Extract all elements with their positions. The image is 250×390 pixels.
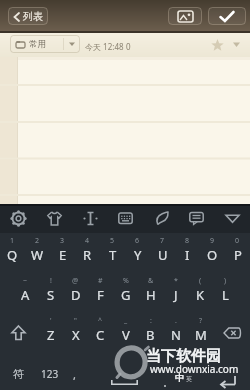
staticText: 英	[186, 375, 192, 383]
staticText: *	[174, 276, 178, 286]
button[interactable]: 列表	[8, 7, 48, 25]
staticText: ?	[199, 316, 203, 326]
staticText: F	[97, 286, 104, 304]
staticText: 9	[210, 236, 215, 246]
staticText: _	[124, 316, 128, 326]
staticText: (	[199, 276, 202, 286]
staticText: A	[21, 286, 30, 304]
button[interactable]: !	[38, 273, 63, 313]
staticText: "	[74, 316, 77, 326]
staticText: Z	[47, 326, 55, 344]
button[interactable]	[183, 205, 209, 232]
staticText: www.downxia.com	[150, 362, 239, 376]
staticText: 中	[175, 372, 184, 383]
staticText: 当下软件园	[146, 347, 221, 366]
staticText: H	[146, 286, 156, 304]
staticText: O	[207, 246, 218, 264]
staticText: R	[83, 246, 92, 264]
staticText: T	[109, 246, 117, 264]
button[interactable]: 2	[25, 233, 50, 273]
button[interactable]: (	[188, 273, 213, 313]
button[interactable]: 123	[36, 357, 64, 390]
staticText: .	[175, 316, 177, 326]
staticText: 123	[41, 367, 59, 381]
staticText: ,	[73, 367, 76, 382]
button[interactable]: @	[63, 273, 88, 313]
staticText: X	[72, 326, 80, 344]
staticText: @	[72, 276, 79, 286]
button[interactable]: 3	[50, 233, 75, 273]
button[interactable]	[148, 205, 174, 232]
button[interactable]: 7	[150, 233, 175, 273]
button[interactable]	[112, 205, 138, 232]
staticText: 列表	[23, 10, 43, 23]
button[interactable]	[205, 33, 229, 57]
staticText: C	[96, 326, 105, 344]
staticText: &	[148, 276, 154, 286]
button[interactable]	[77, 205, 103, 232]
button[interactable]: )	[213, 273, 238, 313]
staticText: )	[224, 276, 227, 286]
staticText: I	[185, 246, 190, 264]
staticText: ^	[98, 316, 103, 326]
button[interactable]: 1	[0, 233, 25, 273]
button[interactable]: ~	[13, 273, 38, 313]
staticText: 6	[135, 236, 140, 246]
staticText: D	[71, 286, 81, 304]
button[interactable]: #	[88, 273, 113, 313]
staticText: N	[171, 326, 181, 344]
staticText: ~	[23, 276, 28, 286]
button[interactable]: %	[113, 273, 138, 313]
staticText: 4	[85, 236, 90, 246]
staticText: 0	[126, 41, 131, 52]
staticText: 3	[60, 236, 65, 246]
staticText: L	[222, 286, 229, 304]
staticText: %	[123, 276, 129, 286]
staticText: 常用	[29, 39, 46, 50]
staticText: P	[234, 246, 242, 264]
button[interactable]	[213, 313, 250, 353]
button[interactable]	[0, 313, 37, 353]
button[interactable]: &	[138, 273, 163, 313]
staticText: G	[121, 286, 131, 304]
button[interactable]: "	[63, 313, 88, 353]
staticText: 2	[35, 236, 40, 246]
staticText: '	[50, 316, 52, 326]
button[interactable]	[5, 205, 31, 232]
button[interactable]: 4	[75, 233, 100, 273]
button[interactable]: ?	[188, 313, 213, 353]
staticText: 今天 12:48	[85, 41, 124, 52]
staticText: !	[50, 276, 52, 286]
staticText: 1	[10, 236, 15, 246]
button[interactable]	[168, 7, 202, 25]
button[interactable]: _	[113, 313, 138, 353]
button[interactable]: 0	[225, 233, 250, 273]
staticText: #	[98, 276, 103, 286]
button[interactable]: '	[38, 313, 63, 353]
staticText: J	[174, 286, 178, 304]
staticText: B	[146, 326, 155, 344]
button[interactable]: 8	[175, 233, 200, 273]
staticText: U	[158, 246, 168, 264]
button[interactable]: 符	[4, 357, 32, 390]
staticText: 8	[185, 236, 190, 246]
staticText: 。	[163, 377, 172, 388]
staticText: 0	[235, 236, 240, 246]
staticText: S	[47, 286, 55, 304]
staticText: W	[31, 246, 44, 264]
button[interactable]	[210, 369, 246, 390]
button[interactable]	[219, 205, 245, 232]
button[interactable]: 9	[200, 233, 225, 273]
staticText: Q	[7, 246, 18, 264]
staticText: M	[195, 326, 207, 344]
button[interactable]	[41, 205, 67, 232]
button[interactable]: 5	[100, 233, 125, 273]
button[interactable]: .	[163, 313, 188, 353]
staticText: 7	[160, 236, 165, 246]
button[interactable]: *	[163, 273, 188, 313]
button[interactable]: ^	[88, 313, 113, 353]
button[interactable]	[208, 7, 246, 25]
button[interactable]: :	[138, 313, 163, 353]
button[interactable]: 6	[125, 233, 150, 273]
button[interactable]: 常用	[10, 35, 80, 53]
